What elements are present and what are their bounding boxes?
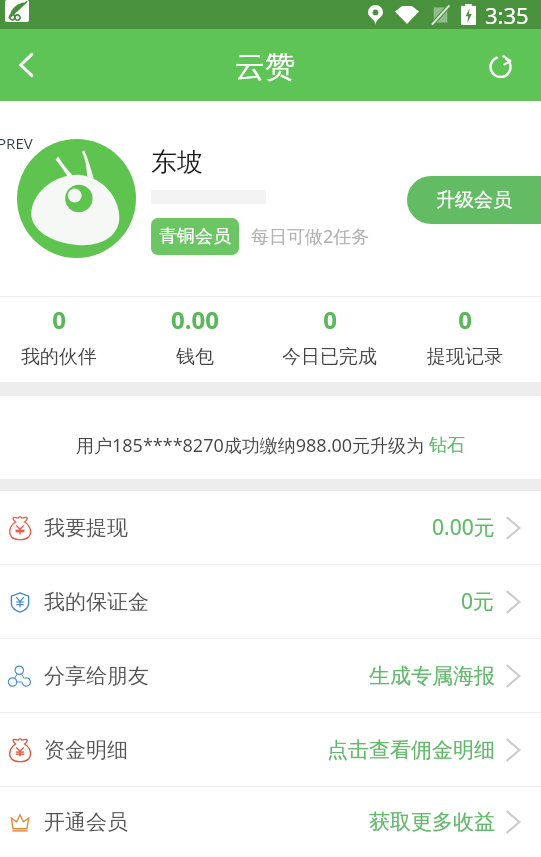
button[interactable]: 0 <box>0 297 127 382</box>
staticText: 0.00元 <box>432 513 495 542</box>
staticText: 升级会员 <box>436 188 512 212</box>
staticText: 我的保证金 <box>44 589 149 615</box>
staticText: 3:35 <box>485 0 529 29</box>
button[interactable]: 分享给朋友 <box>0 639 541 712</box>
staticText: 0.00 <box>171 303 219 336</box>
button[interactable]: 0 <box>262 297 397 382</box>
staticText: 0 <box>52 303 66 336</box>
staticText: 用户185****8270成功缴纳988.00元升级为 <box>76 433 429 458</box>
staticText: 青铜会员 <box>159 225 231 248</box>
staticText: 获取更多收益 <box>369 809 495 835</box>
button[interactable]: 0 <box>397 297 532 382</box>
staticText: 我的伙伴 <box>21 345 97 369</box>
staticText: 开通会员 <box>44 809 128 835</box>
button[interactable]: 我要提现 <box>0 491 541 564</box>
button[interactable]: 0.00 <box>127 297 262 382</box>
button[interactable]: 开通会员 <box>0 787 541 857</box>
staticText: 0 <box>458 303 472 336</box>
button[interactable]: 升级会员 <box>407 176 541 224</box>
staticText: 钱包 <box>176 345 214 369</box>
button[interactable]: 资金明细 <box>0 713 541 786</box>
button[interactable]: Back <box>2 41 50 89</box>
staticText: 提现记录 <box>427 345 503 369</box>
staticText: 云赞 <box>235 48 295 86</box>
button[interactable]: 青铜会员 <box>151 218 239 255</box>
staticText: 每日可做2任务 <box>251 224 370 249</box>
staticText: 资金明细 <box>44 737 128 763</box>
button[interactable]: Refresh <box>477 41 525 89</box>
staticText: 0元 <box>461 587 495 616</box>
staticText: 我要提现 <box>44 515 128 541</box>
button[interactable]: 我的保证金 <box>0 565 541 638</box>
staticText: 生成专属海报 <box>369 663 495 689</box>
staticText: 东坡 <box>151 146 203 179</box>
staticText: 今日已完成 <box>282 345 377 369</box>
staticText: 分享给朋友 <box>44 663 149 689</box>
staticText: 点击查看佣金明细 <box>327 737 495 763</box>
staticText: PREV <box>0 133 33 153</box>
staticText: 0 <box>323 303 337 336</box>
staticText: 钻石 <box>429 434 465 457</box>
